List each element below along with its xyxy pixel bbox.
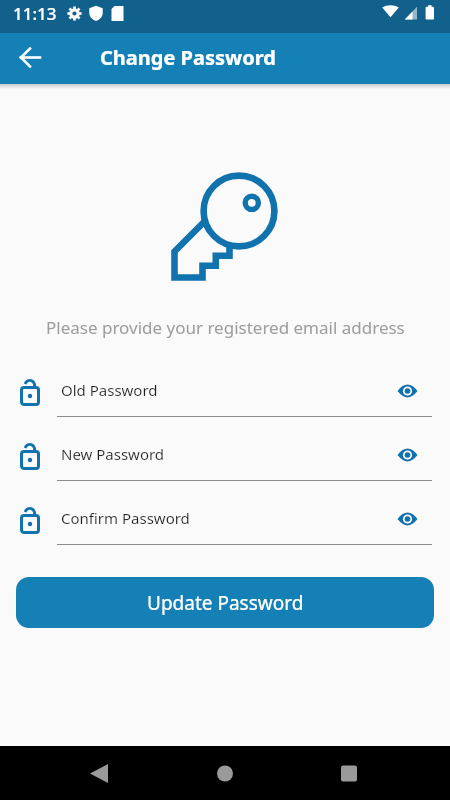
button[interactable] [325, 752, 373, 796]
button[interactable] [394, 380, 422, 402]
staticText: Change Password [100, 44, 276, 71]
staticText: Please provide your registered email add… [46, 316, 405, 339]
staticText: Confirm Password [61, 508, 190, 528]
button[interactable] [12, 39, 50, 77]
staticText: New Password [61, 444, 165, 464]
button[interactable] [394, 444, 422, 466]
button[interactable] [201, 752, 249, 796]
button[interactable] [10, 432, 440, 482]
button[interactable] [75, 752, 123, 796]
button[interactable] [10, 496, 440, 546]
staticText: 11:13 [13, 2, 57, 25]
staticText: Old Password [61, 380, 158, 400]
button[interactable]: Update Password [16, 577, 434, 628]
staticText: Update Password [147, 590, 304, 616]
button[interactable] [10, 368, 440, 418]
button[interactable] [394, 508, 422, 530]
